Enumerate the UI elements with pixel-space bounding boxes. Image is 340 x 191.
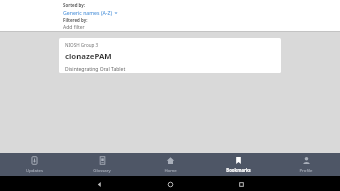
button[interactable]: Bookmarks [204, 153, 272, 176]
staticText: Glossary [93, 167, 111, 173]
staticText: Profile [299, 167, 313, 173]
staticText: Sorted by: [63, 2, 85, 8]
button[interactable]: Updates [0, 153, 68, 176]
staticText: Updates [26, 167, 43, 173]
staticText: Disintegrating Oral Tablet [65, 66, 126, 73]
button[interactable]: Glossary [68, 153, 136, 176]
staticText: Filtered by: [63, 17, 88, 23]
button[interactable]: Generic names (A-Z) [63, 9, 118, 16]
button[interactable]: NIOSH Group 3 [59, 38, 281, 73]
button[interactable]: Recent apps [234, 177, 248, 191]
button[interactable]: Back [92, 177, 106, 191]
staticText: clonazePAM [65, 51, 112, 62]
button[interactable]: Profile [272, 153, 340, 176]
button[interactable]: Home [163, 177, 177, 191]
staticText: Bookmarks [226, 167, 251, 173]
button[interactable]: Add filter [63, 24, 85, 31]
button[interactable]: Home [136, 153, 204, 176]
staticText: Generic names (A-Z) [63, 9, 112, 16]
staticText: NIOSH Group 3 [65, 42, 99, 48]
staticText: Home [164, 167, 177, 173]
